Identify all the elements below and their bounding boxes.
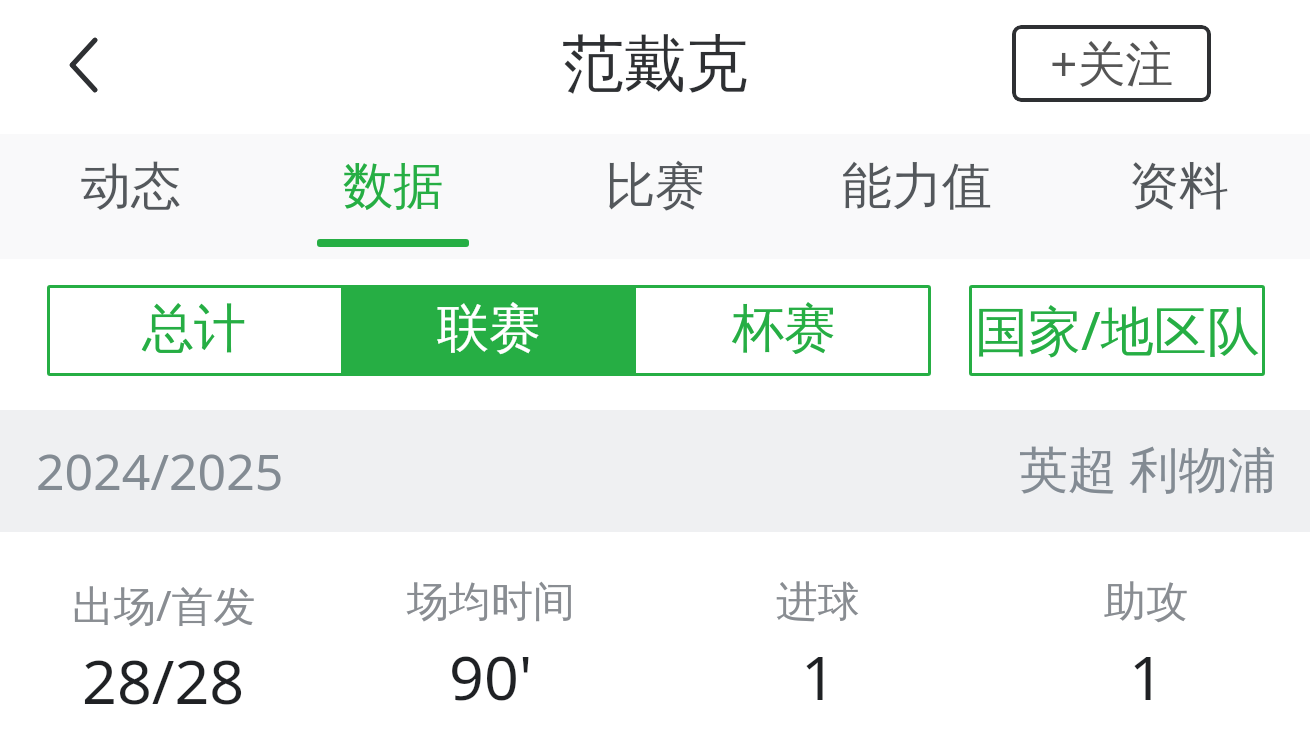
- button[interactable]: 资料: [1048, 134, 1310, 259]
- button[interactable]: 助攻: [982, 576, 1310, 718]
- button[interactable]: 国家/地区队: [969, 285, 1265, 376]
- staticText: 1: [1129, 635, 1164, 718]
- staticText: 场均时间: [407, 576, 575, 629]
- button[interactable]: 2024/2025: [0, 410, 1310, 532]
- staticText: 出场/首发: [72, 576, 256, 633]
- staticText: 总计: [142, 296, 246, 362]
- staticText: 2024/2025: [36, 437, 284, 505]
- staticText: 杯赛: [732, 296, 836, 362]
- staticText: 动态: [81, 155, 181, 218]
- button[interactable]: 杯赛: [636, 285, 931, 376]
- button[interactable]: 场均时间: [327, 576, 654, 718]
- button[interactable]: 动态: [0, 134, 262, 259]
- staticText: 联赛: [437, 296, 541, 362]
- button[interactable]: 进球: [654, 576, 982, 718]
- staticText: 范戴克: [562, 25, 748, 103]
- button[interactable]: 返回: [42, 27, 118, 103]
- button[interactable]: 联赛: [341, 285, 636, 376]
- staticText: 能力值: [842, 155, 992, 218]
- staticText: 助攻: [1104, 576, 1188, 629]
- button[interactable]: 总计: [47, 285, 341, 376]
- button[interactable]: 出场/首发: [0, 576, 327, 722]
- staticText: 90': [449, 635, 533, 718]
- staticText: 1: [801, 635, 836, 718]
- staticText: 英超 利物浦: [1019, 435, 1277, 502]
- button[interactable]: 能力值: [786, 134, 1048, 259]
- staticText: 数据: [343, 155, 443, 218]
- staticText: +关注: [1050, 30, 1174, 96]
- staticText: 资料: [1129, 155, 1229, 218]
- button[interactable]: 数据: [262, 134, 524, 259]
- staticText: 比赛: [605, 155, 705, 218]
- button[interactable]: 比赛: [524, 134, 786, 259]
- button[interactable]: +关注: [1012, 25, 1211, 102]
- staticText: 进球: [776, 576, 860, 629]
- staticText: 国家/地区队: [975, 293, 1260, 365]
- staticText: 28/28: [82, 639, 245, 722]
